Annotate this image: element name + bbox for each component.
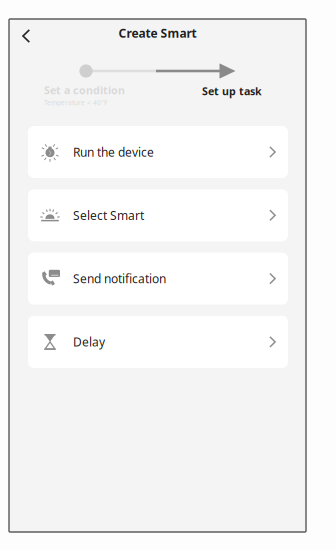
staticText: Run the device [73,144,154,160]
staticText: Set up task [202,84,262,98]
button[interactable]: Select Smart [28,189,288,241]
staticText: Delay [73,334,105,350]
staticText: Select Smart [73,207,144,223]
staticText: Send notification [73,271,166,286]
staticText: Set a condition [44,83,125,97]
button[interactable]: Run the device [28,126,288,178]
staticText: Create Smart [118,25,196,41]
button[interactable]: Delay [28,316,288,368]
button[interactable]: Back [14,23,38,49]
staticText: Temperature < 40°F [44,98,107,107]
button[interactable]: Send notification [28,253,288,305]
